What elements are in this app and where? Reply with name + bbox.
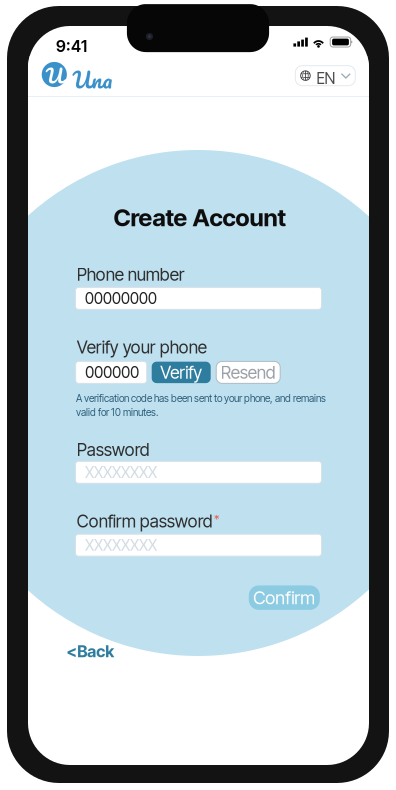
staticText: <Back (66, 642, 114, 661)
staticText: EN (316, 69, 335, 88)
staticText: valid for 10 minutes. (76, 406, 158, 418)
staticText: Phone number (77, 264, 185, 285)
button[interactable]: Confirm (249, 585, 320, 610)
button[interactable]: <Back (66, 642, 114, 661)
staticText: Confirm (253, 587, 315, 609)
staticText: XXXXXXXX (85, 463, 157, 482)
button[interactable]: Verify (152, 362, 211, 383)
staticText: U (46, 57, 64, 92)
staticText: Verify (160, 362, 202, 383)
staticText: * (214, 512, 219, 526)
staticText: A verification code has been sent to you… (76, 392, 326, 404)
staticText: XXXXXXXX (85, 536, 157, 554)
button[interactable]: Resend (216, 361, 280, 383)
button[interactable]: Language: English (295, 66, 355, 86)
staticText: Password (77, 439, 150, 460)
staticText: Confirm password (77, 511, 213, 532)
staticText: Resend (221, 362, 276, 383)
staticText: Una (72, 61, 112, 98)
staticText: Verify your phone (77, 337, 207, 358)
staticText: 9:41 (56, 36, 87, 56)
staticText: Create Account (113, 203, 286, 232)
staticText: 000000 (85, 363, 139, 382)
staticText: 00000000 (85, 289, 157, 308)
